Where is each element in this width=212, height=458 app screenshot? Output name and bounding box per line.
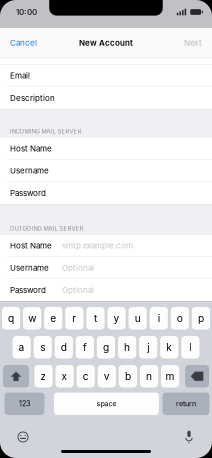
staticText: c: [83, 370, 89, 382]
staticText: w: [28, 312, 36, 324]
button[interactable]: g: [97, 336, 115, 358]
button[interactable]: m: [161, 365, 179, 387]
button[interactable]: return: [163, 392, 210, 415]
button[interactable]: Email: [0, 65, 212, 87]
staticText: m: [166, 370, 175, 382]
staticText: b: [125, 370, 131, 382]
button[interactable]: c: [77, 365, 95, 387]
button[interactable]: w: [23, 307, 41, 329]
staticText: INCOMING MAIL SERVER: [9, 128, 81, 135]
staticText: OUTGOING MAIL SERVER: [9, 225, 83, 232]
button[interactable]: t: [86, 307, 105, 329]
staticText: a: [19, 341, 25, 353]
staticText: n: [146, 370, 152, 382]
button[interactable]: Username: [0, 257, 212, 279]
staticText: s: [40, 341, 45, 353]
staticText: Optional: [62, 263, 94, 273]
button[interactable]: h: [118, 336, 136, 358]
staticText: smtp.example.com: [62, 241, 133, 250]
button[interactable]: Cancel: [0, 28, 43, 57]
button[interactable]: d: [55, 336, 73, 358]
button[interactable]: Dictation: [179, 429, 199, 445]
staticText: r: [72, 312, 76, 324]
staticText: Password: [10, 285, 46, 295]
staticText: Cancel: [10, 38, 37, 48]
staticText: x: [62, 370, 68, 382]
button[interactable]: z: [34, 365, 53, 387]
button[interactable]: p: [192, 307, 210, 329]
staticText: h: [124, 341, 130, 353]
staticText: v: [104, 370, 110, 382]
staticText: Username: [10, 263, 49, 273]
staticText: space: [96, 399, 116, 408]
staticText: q: [8, 312, 14, 324]
button[interactable]: 123: [4, 392, 44, 415]
staticText: k: [166, 341, 172, 353]
button[interactable]: Delete: [185, 365, 209, 387]
button[interactable]: j: [139, 336, 157, 358]
button[interactable]: q: [2, 307, 20, 329]
button[interactable]: u: [129, 307, 147, 329]
staticText: z: [40, 370, 46, 382]
button[interactable]: Description: [0, 87, 212, 109]
staticText: p: [198, 312, 204, 324]
staticText: e: [50, 312, 56, 324]
button[interactable]: n: [140, 365, 158, 387]
staticText: j: [147, 341, 149, 353]
staticText: Next: [184, 38, 202, 48]
staticText: Username: [10, 166, 49, 175]
staticText: o: [177, 312, 183, 324]
button[interactable]: Shift: [3, 365, 29, 387]
button[interactable]: Emoji: [13, 429, 33, 445]
button[interactable]: a: [12, 336, 31, 358]
button[interactable]: Host Name: [0, 138, 212, 160]
staticText: Host Name: [10, 144, 52, 153]
staticText: Description: [10, 93, 55, 103]
staticText: f: [83, 341, 87, 353]
button[interactable]: o: [171, 307, 189, 329]
staticText: t: [94, 312, 97, 324]
button[interactable]: space: [54, 392, 159, 415]
staticText: d: [61, 341, 67, 353]
staticText: i: [158, 312, 160, 324]
button[interactable]: e: [44, 307, 62, 329]
button[interactable]: Host Name: [0, 235, 212, 257]
button[interactable]: y: [107, 307, 126, 329]
button[interactable]: b: [119, 365, 137, 387]
staticText: Email: [10, 71, 30, 80]
button[interactable]: k: [160, 336, 178, 358]
staticText: g: [103, 341, 109, 353]
button[interactable]: Next: [178, 28, 212, 57]
staticText: y: [113, 312, 119, 324]
button[interactable]: s: [34, 336, 52, 358]
staticText: Password: [10, 188, 46, 198]
button[interactable]: r: [65, 307, 83, 329]
staticText: 10:00: [16, 7, 37, 17]
button[interactable]: Username: [0, 160, 212, 182]
button[interactable]: f: [76, 336, 94, 358]
button[interactable]: v: [98, 365, 116, 387]
button[interactable]: Password: [0, 279, 212, 301]
staticText: Optional: [62, 285, 94, 295]
staticText: l: [189, 341, 191, 353]
button[interactable]: l: [181, 336, 199, 358]
button[interactable]: x: [55, 365, 74, 387]
button[interactable]: Password: [0, 182, 212, 204]
staticText: 123: [19, 399, 30, 408]
staticText: New Account: [79, 38, 133, 48]
staticText: Host Name: [10, 241, 52, 250]
staticText: return: [176, 399, 196, 408]
button[interactable]: i: [150, 307, 168, 329]
staticText: u: [135, 312, 141, 324]
